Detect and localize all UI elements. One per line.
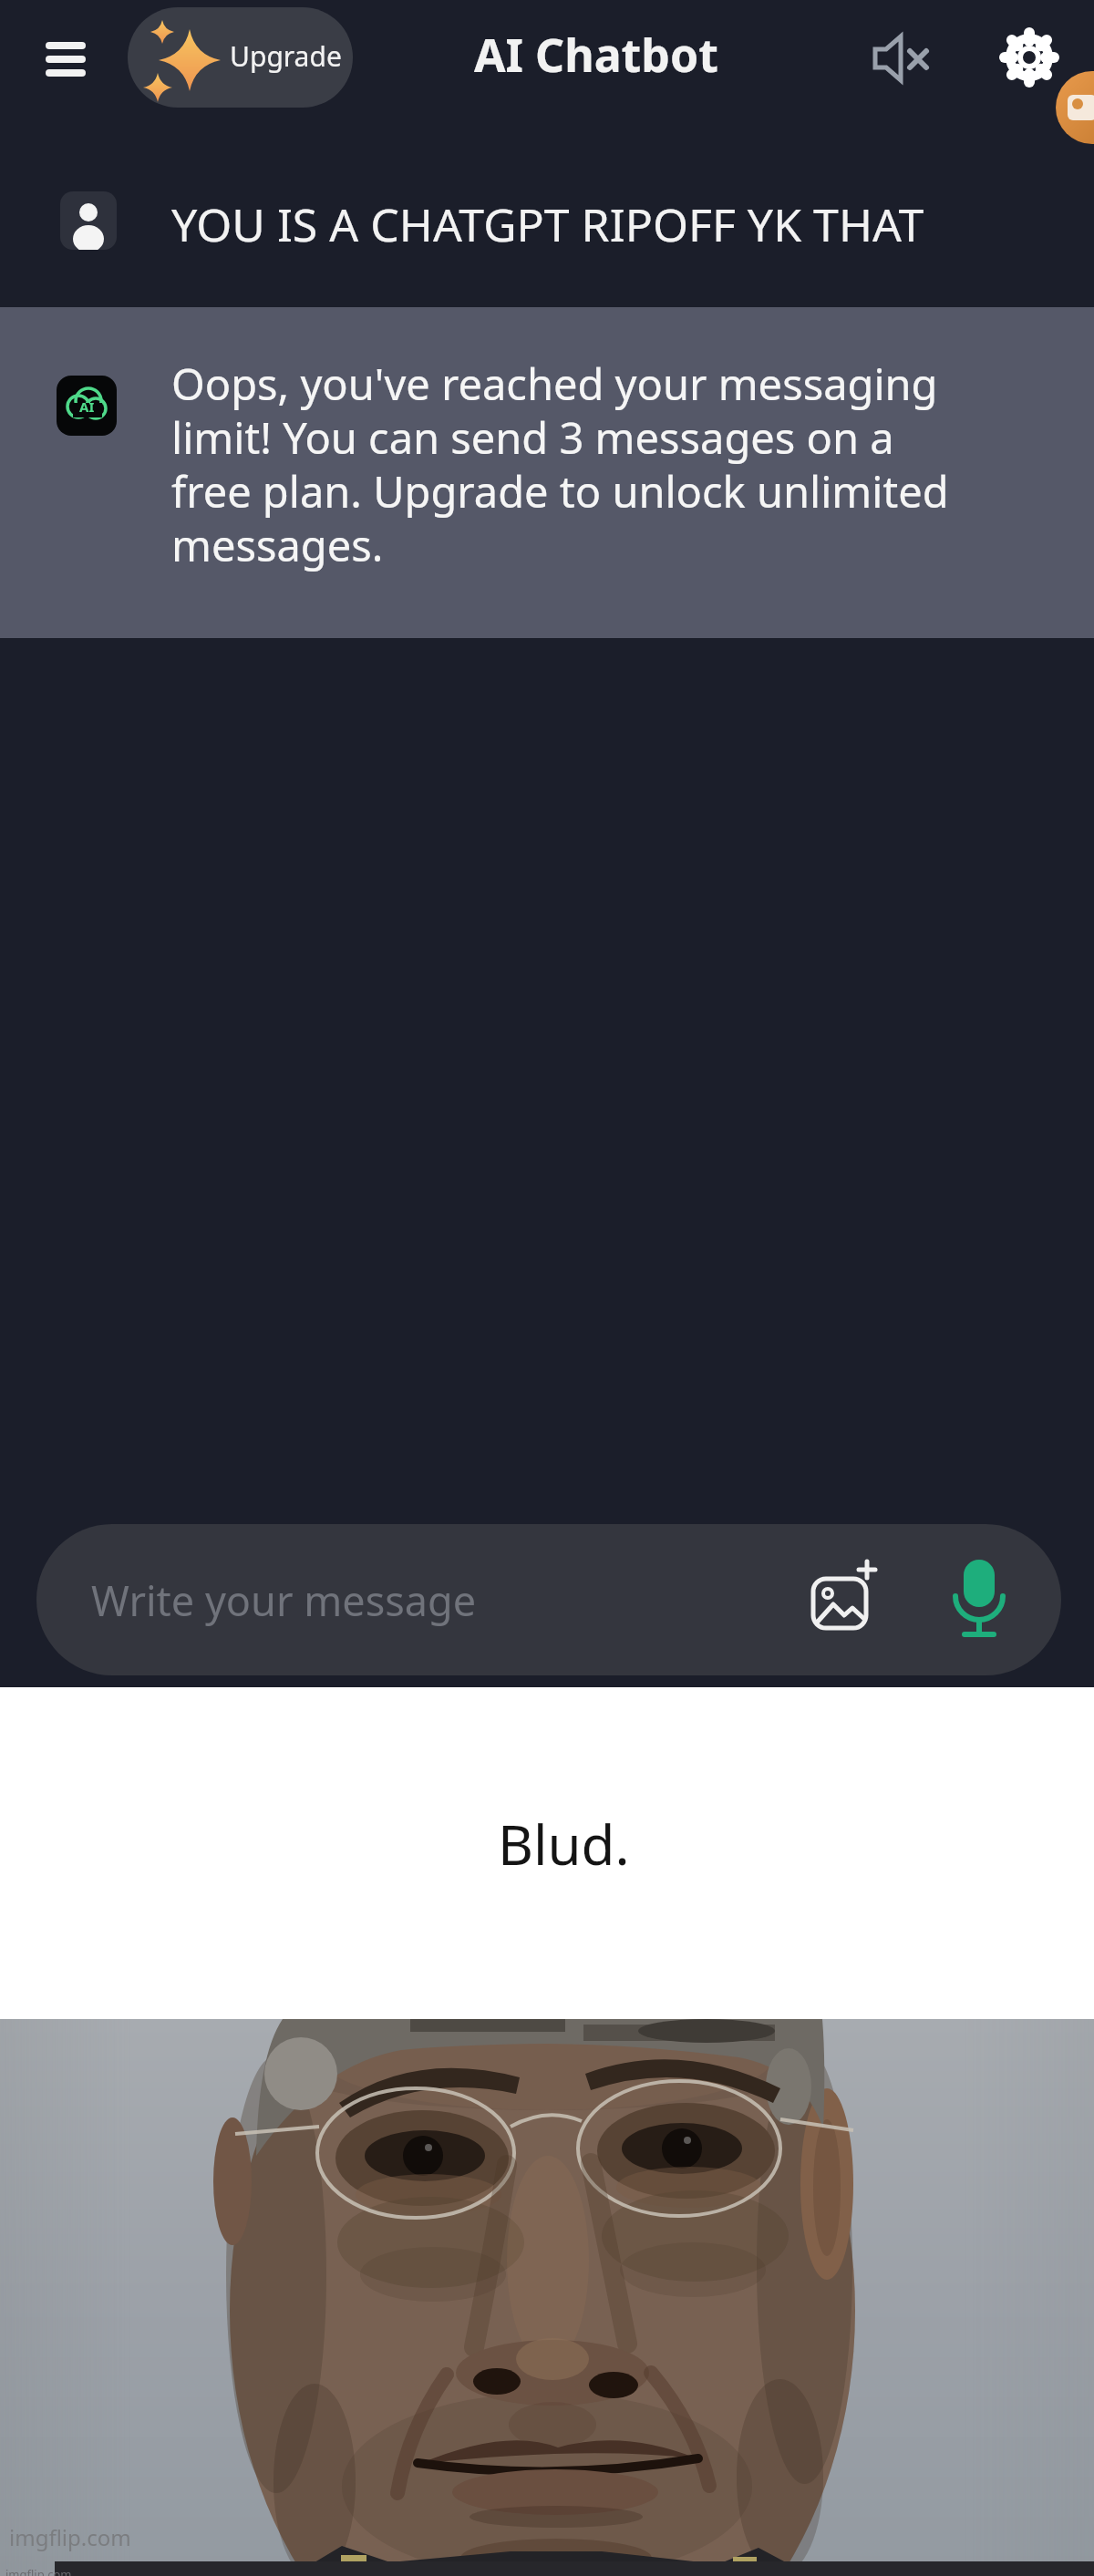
staticText: imgflip.com (5, 2566, 72, 2576)
staticText: imgflip.com (9, 2522, 131, 2552)
staticText: AI Chatbot (474, 24, 718, 86)
button[interactable] (873, 35, 934, 82)
button[interactable] (955, 1558, 1003, 1642)
staticText: Upgrade (230, 37, 342, 75)
button[interactable] (999, 27, 1059, 88)
button[interactable]: Upgrade (128, 7, 353, 108)
button[interactable] (811, 1568, 879, 1635)
staticText: YOU IS A CHATGPT RIPOFF YK THAT (171, 193, 924, 255)
button[interactable] (1056, 71, 1094, 144)
staticText: Write your message (91, 1572, 477, 1628)
button[interactable]: Write your message (36, 1524, 1061, 1675)
staticText: AI (79, 397, 95, 416)
button[interactable] (42, 38, 89, 80)
staticText: Oops, you've reached your messaging limi… (171, 355, 949, 574)
staticText: Blud. (498, 1807, 630, 1881)
